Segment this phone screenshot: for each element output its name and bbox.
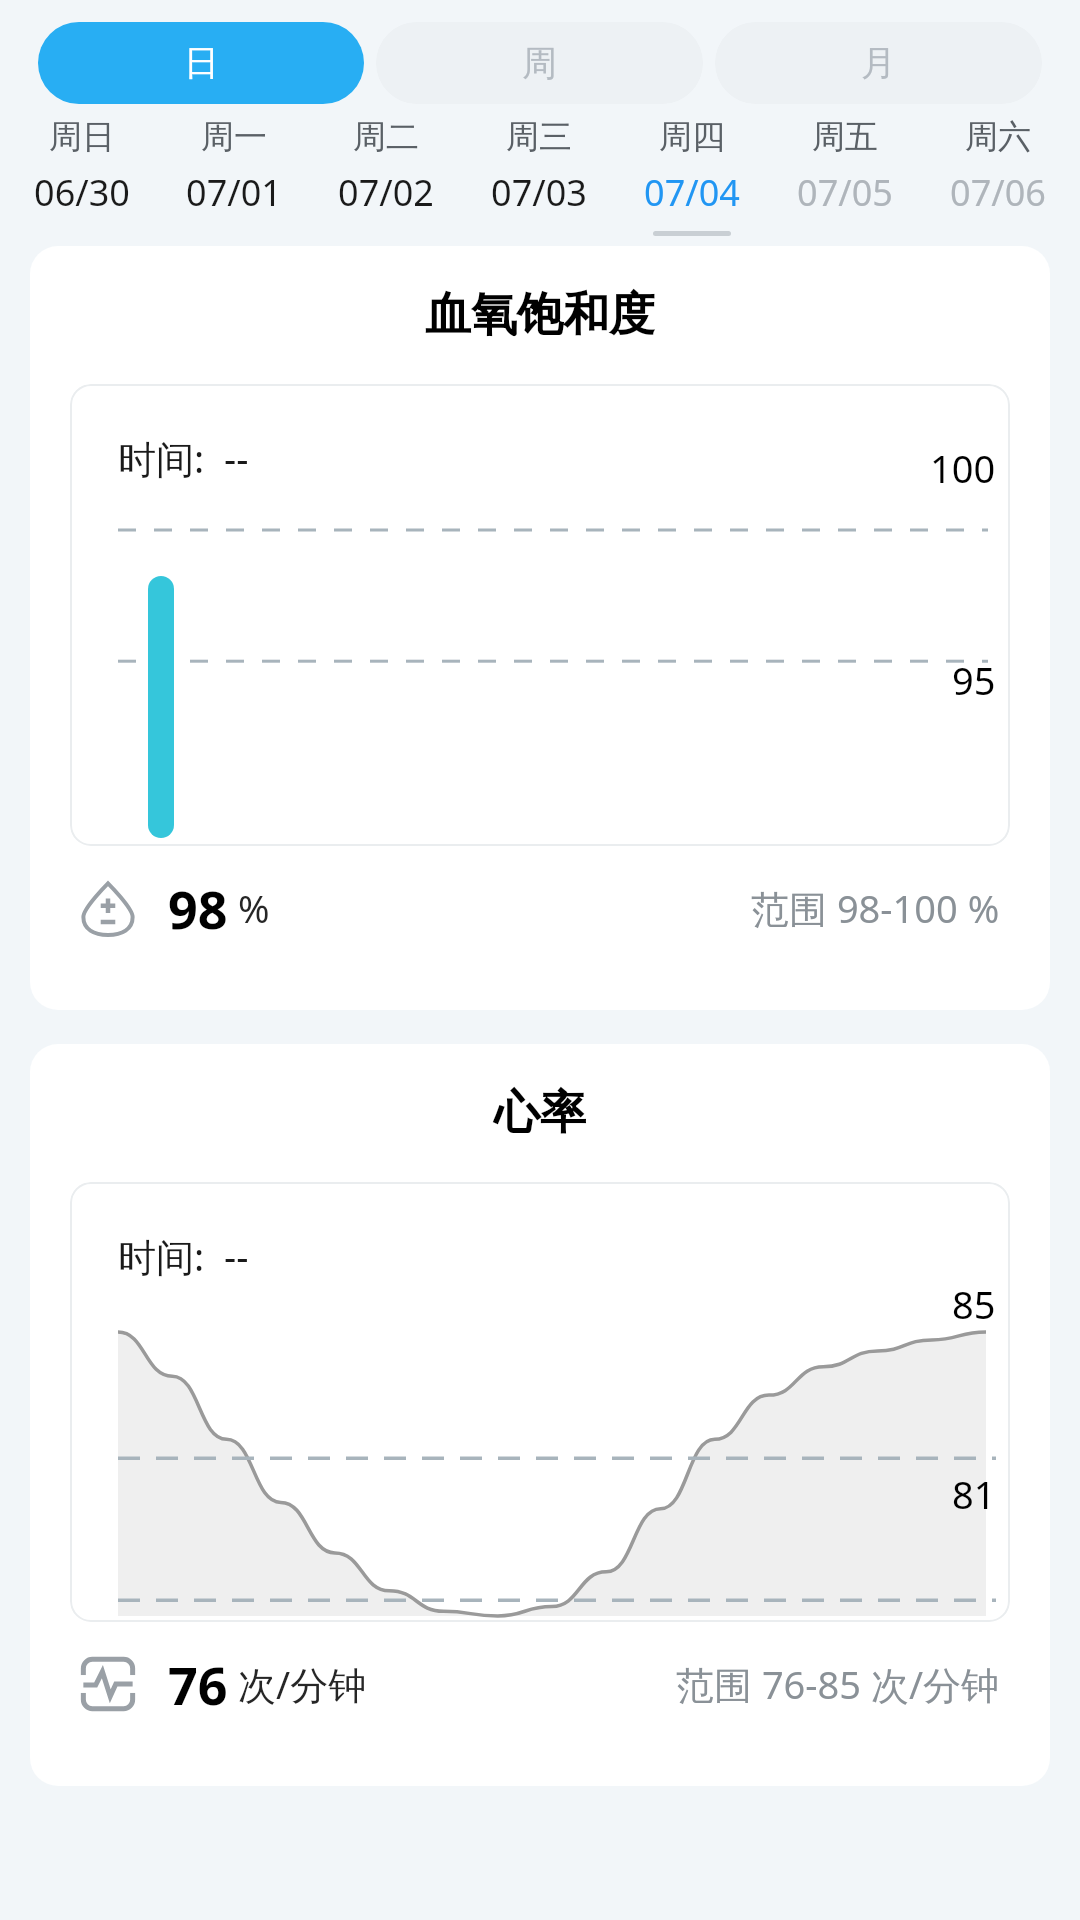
- button[interactable]: 月: [715, 22, 1042, 104]
- staticText: 95: [952, 654, 996, 706]
- staticText: 81: [952, 1468, 996, 1520]
- staticText: 07/06: [950, 168, 1046, 217]
- button[interactable]: 06/30: [6, 168, 158, 217]
- staticText: 心率: [30, 1084, 1050, 1142]
- staticText: 周四: [659, 116, 725, 158]
- staticText: %: [238, 882, 270, 934]
- other: 心率: [80, 1656, 136, 1712]
- button[interactable]: 心率: [30, 1044, 1050, 1786]
- staticText: 周二: [353, 116, 419, 158]
- button[interactable]: 07/03: [462, 168, 615, 217]
- staticText: 时间: --: [118, 432, 249, 484]
- button[interactable]: 07/01: [158, 168, 310, 217]
- staticText: 周六: [965, 116, 1031, 158]
- staticText: 07/03: [491, 168, 587, 217]
- staticText: 76: [168, 1649, 228, 1720]
- staticText: 06/30: [34, 168, 130, 217]
- button[interactable]: 07/05: [768, 168, 921, 217]
- staticText: 次/分钟: [238, 1658, 367, 1710]
- button[interactable]: 07/04: [615, 168, 768, 217]
- staticText: 07/04: [644, 168, 740, 217]
- staticText: 范围 98-100 %: [751, 882, 1000, 934]
- staticText: 周: [522, 41, 557, 85]
- staticText: 07/02: [338, 168, 434, 217]
- button[interactable]: 07/02: [310, 168, 462, 217]
- staticText: 周日: [49, 116, 115, 158]
- staticText: 范围 76-85 次/分钟: [676, 1658, 1000, 1710]
- staticText: 周一: [201, 116, 267, 158]
- other: 血氧: [80, 880, 136, 936]
- staticText: 血氧饱和度: [30, 286, 1050, 344]
- staticText: 日: [184, 41, 219, 85]
- staticText: 100: [930, 442, 996, 494]
- button[interactable]: 07/06: [921, 168, 1074, 217]
- button[interactable]: 血氧饱和度: [30, 246, 1050, 1010]
- staticText: 月: [861, 41, 896, 85]
- staticText: 85: [952, 1278, 996, 1330]
- staticText: 时间: --: [118, 1230, 249, 1282]
- button[interactable]: 日: [38, 22, 364, 104]
- staticText: 07/01: [186, 168, 282, 217]
- staticText: 周五: [812, 116, 878, 158]
- staticText: 90: [952, 836, 996, 846]
- staticText: 07/05: [797, 168, 893, 217]
- staticText: 98: [168, 873, 228, 944]
- staticText: 周三: [506, 116, 572, 158]
- button[interactable]: 周: [376, 22, 703, 104]
